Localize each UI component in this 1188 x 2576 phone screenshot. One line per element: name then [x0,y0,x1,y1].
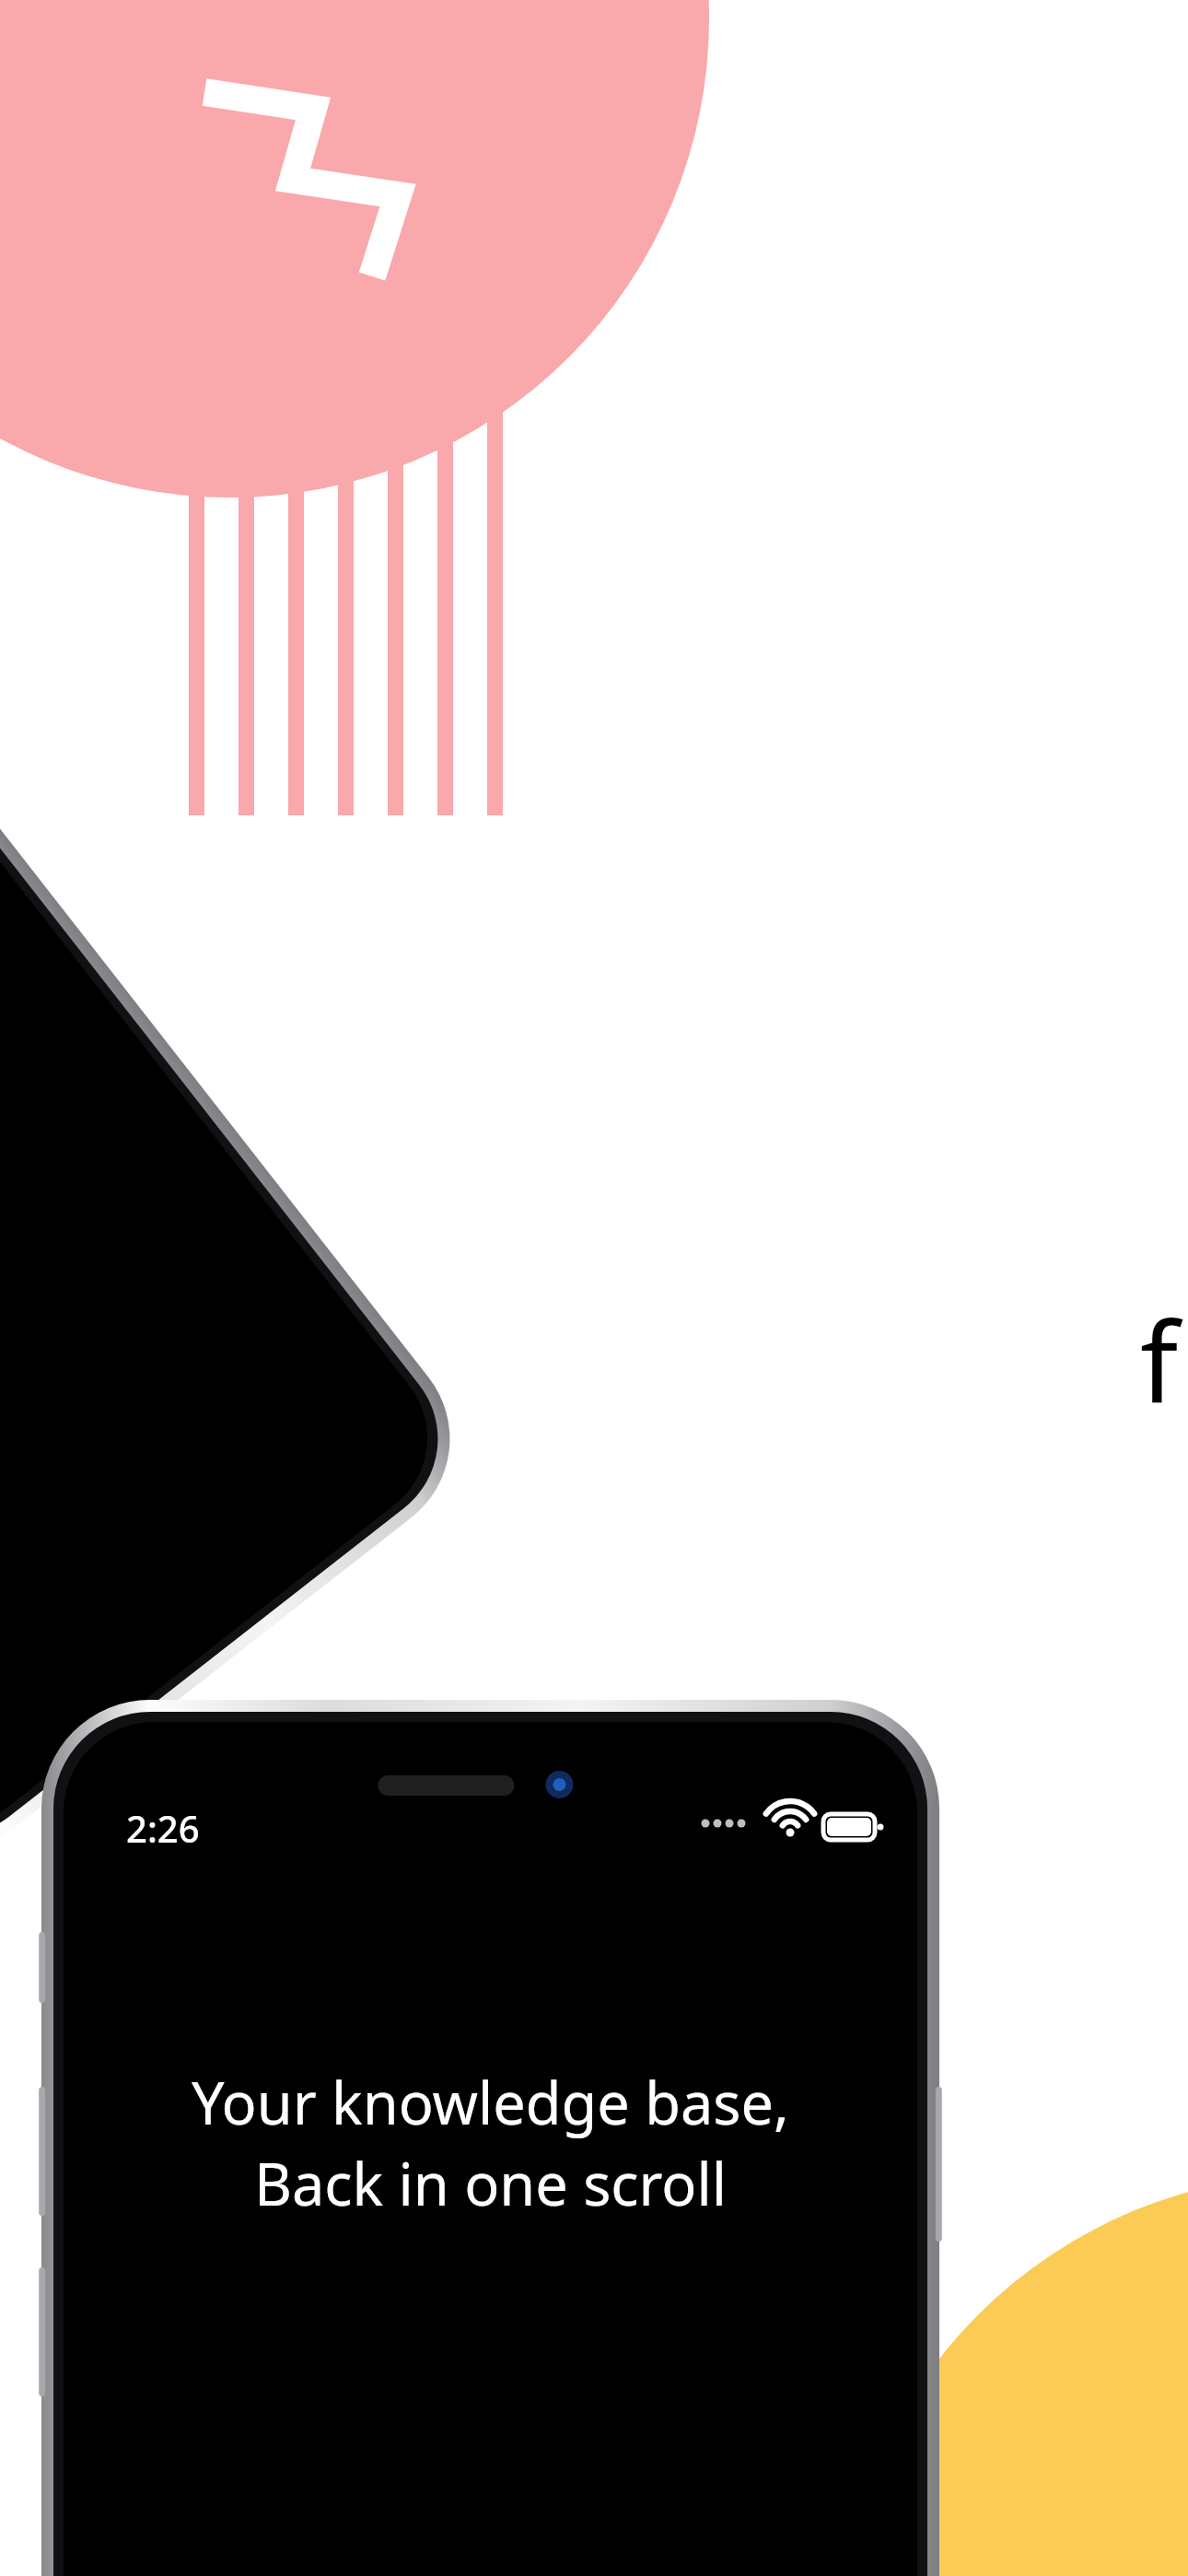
button[interactable]: App preview showcase [0,0,1188,2576]
